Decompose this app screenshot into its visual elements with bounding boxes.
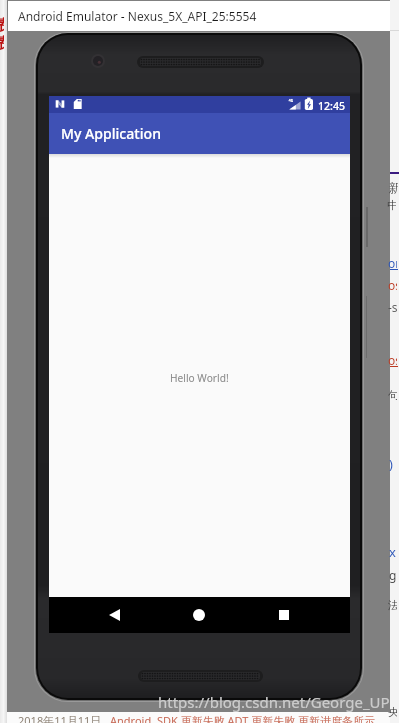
staticText: 句: [388, 388, 397, 402]
staticText: 12:45: [318, 99, 346, 113]
staticText: x: [389, 543, 396, 561]
staticText: Hello World!: [170, 371, 229, 385]
staticText: 新: [389, 180, 398, 195]
staticText: 中: [387, 198, 396, 212]
staticText: 2018年11月11日: [18, 713, 110, 723]
staticText: 法: [388, 598, 397, 612]
button[interactable]: Back: [96, 597, 132, 633]
button[interactable]: Home: [181, 597, 217, 633]
staticText: os: [388, 277, 397, 293]
staticText: 费 费: [0, 16, 4, 53]
staticText: g: [389, 567, 397, 583]
staticText: 央: [388, 705, 397, 719]
staticText: os: [388, 352, 397, 368]
staticText: https://blog.csdn.net/George_UP: [158, 692, 390, 712]
staticText: Android Emulator - Nexus_5X_API_25:5554: [18, 8, 257, 24]
button[interactable]: Recent apps: [266, 597, 302, 633]
staticText: Android SDK 更新失败 ADT 更新失败 更新进度条所示: [110, 713, 376, 723]
staticText: on: [388, 255, 397, 271]
staticText: ): [389, 455, 393, 473]
staticText: My Application: [61, 124, 161, 143]
staticText: -s: [388, 299, 397, 315]
